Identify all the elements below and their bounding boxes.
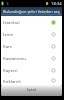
button[interactable]: Kastamonu bbox=[1, 52, 62, 64]
staticText: Kayseri bbox=[3, 67, 18, 73]
button[interactable]: Kırklareli bbox=[1, 76, 62, 85]
staticText: İptal bbox=[27, 87, 36, 93]
button[interactable]: İzmir bbox=[1, 28, 62, 40]
staticText: Bulunduğun şehri listeden seç bbox=[3, 9, 60, 14]
button[interactable]: İptal bbox=[1, 85, 62, 96]
staticText: 18:34 bbox=[51, 1, 62, 7]
button[interactable]: İstanbul bbox=[1, 16, 62, 28]
staticText: Kırklareli bbox=[3, 78, 21, 84]
staticText: İzmir bbox=[3, 31, 14, 37]
staticText: İstanbul bbox=[3, 19, 20, 25]
button[interactable]: Kayseri bbox=[1, 64, 62, 76]
staticText: Kars bbox=[3, 43, 12, 49]
staticText: Kastamonu bbox=[3, 55, 27, 61]
button[interactable]: Kars bbox=[1, 40, 62, 52]
